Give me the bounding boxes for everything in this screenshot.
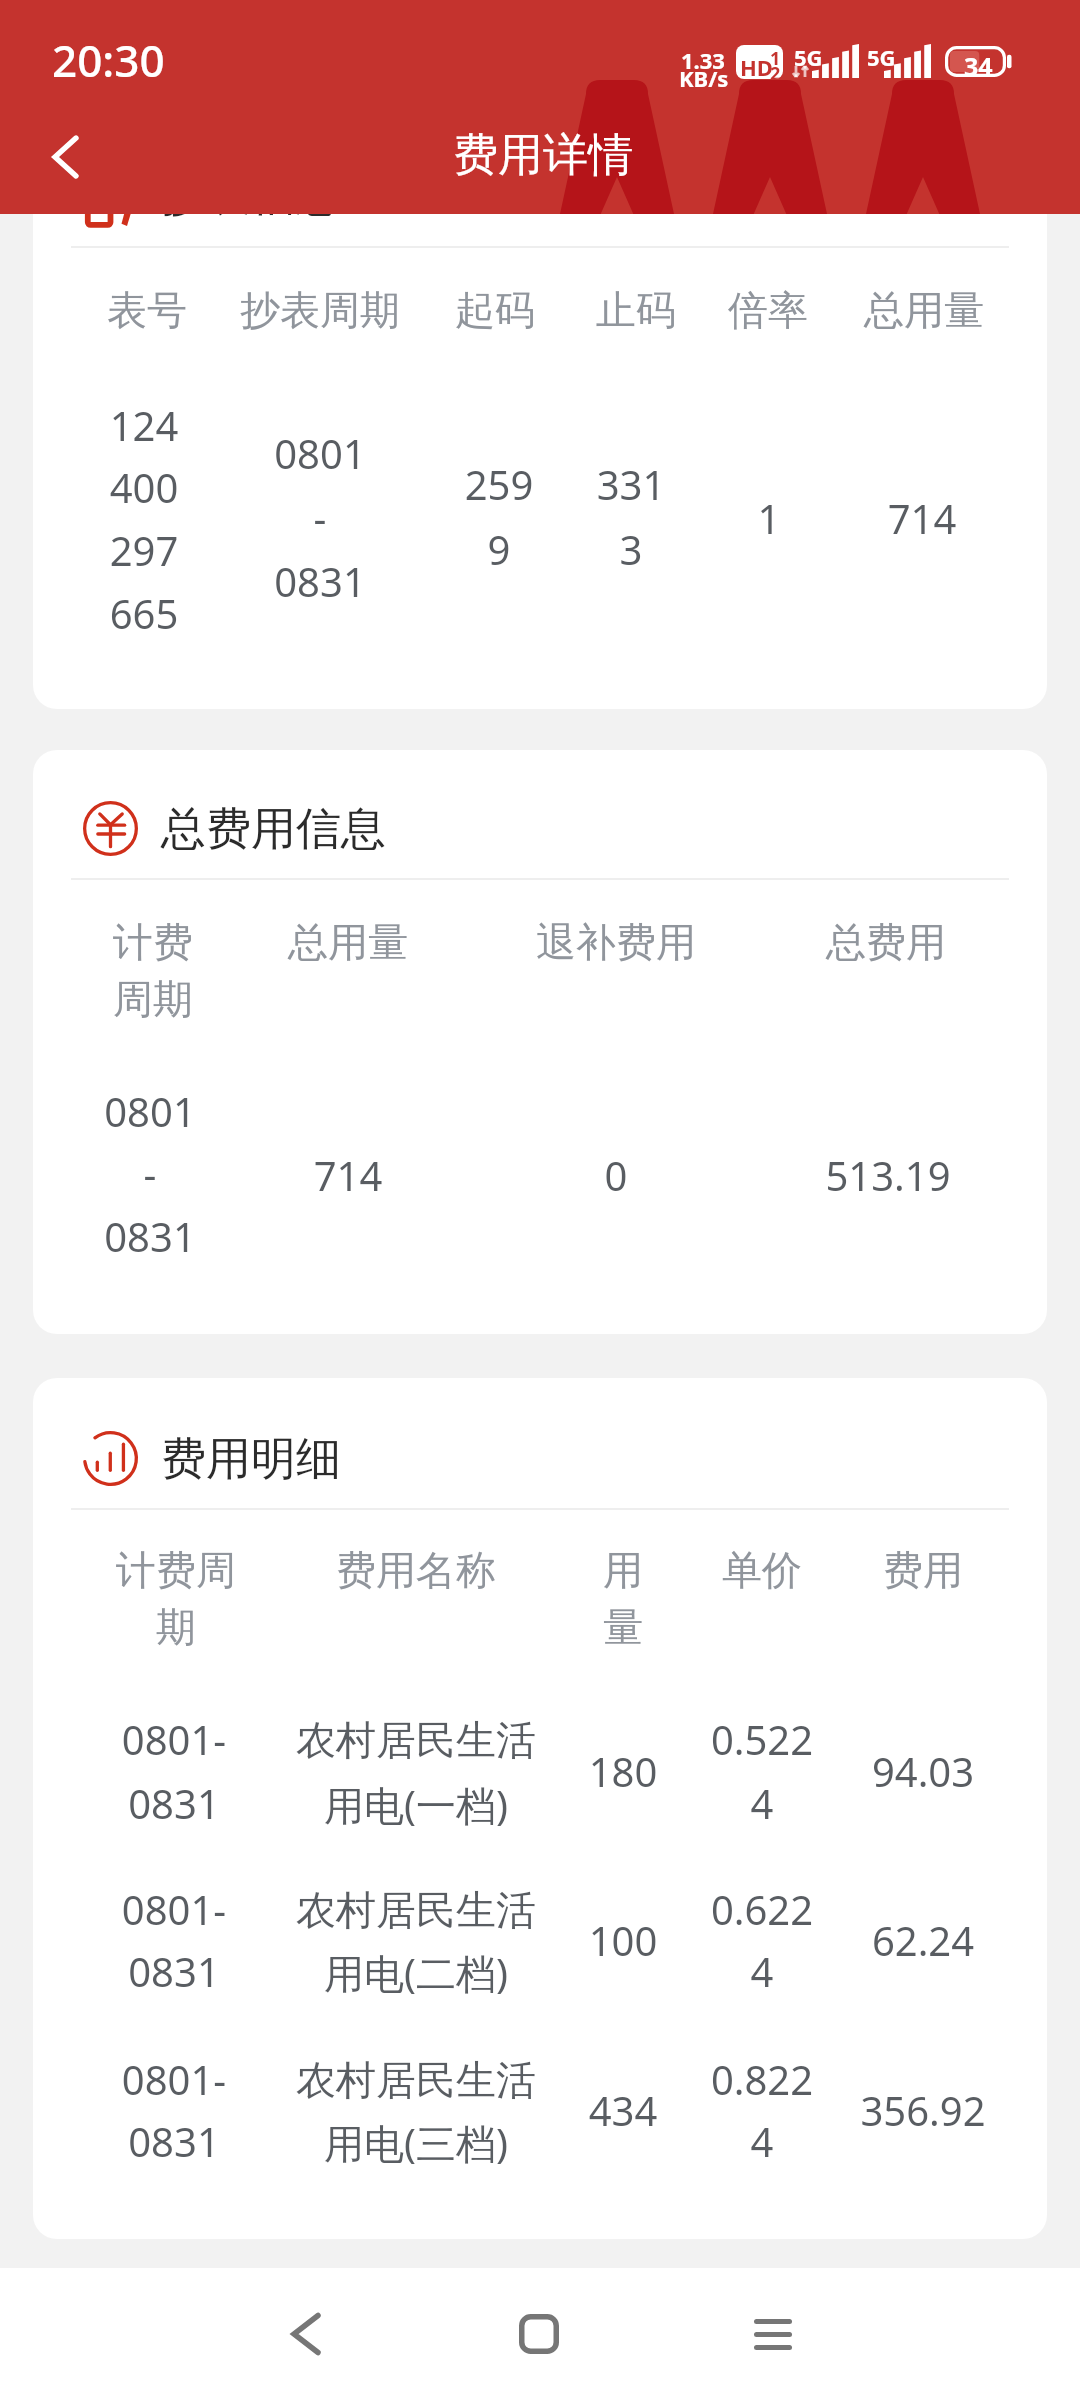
staticText: 农村居民生活 用电(三档) xyxy=(276,2055,556,2170)
button[interactable]: Home xyxy=(449,2268,629,2400)
staticText: 513.19 xyxy=(768,1148,1008,1202)
staticText: 用 量 xyxy=(593,1545,653,1653)
staticText: 0801- 0831 xyxy=(74,1882,274,1998)
staticText: 农村居民生活 用电(二档) xyxy=(276,1885,556,2000)
staticText: 总用量 xyxy=(824,285,1024,335)
staticText: 5G xyxy=(794,42,823,72)
button[interactable]: Back xyxy=(216,2268,396,2400)
staticText: 94.03 xyxy=(823,1744,1023,1798)
staticText: 抄表周期 xyxy=(205,285,435,335)
staticText: 费用 xyxy=(843,1545,1003,1595)
staticText: 0801- 0831 xyxy=(74,2052,274,2169)
staticText: 总费用信息 xyxy=(161,801,386,858)
staticText: 退补费用 xyxy=(491,917,741,967)
staticText: 331 3 xyxy=(551,457,711,577)
staticText: 起码 xyxy=(415,285,575,335)
staticText: 124 400 297 665 xyxy=(64,398,224,641)
staticText: 农村居民生活 用电(一档) xyxy=(276,1715,556,1832)
staticText: 单价 xyxy=(682,1545,842,1595)
staticText: 抄表信息 xyxy=(161,167,341,224)
staticText: 费用名称 xyxy=(296,1545,536,1595)
staticText: 0801 - 0831 xyxy=(50,1084,250,1264)
staticText: 62.24 xyxy=(823,1913,1023,1967)
staticText: 714 xyxy=(842,491,1002,545)
staticText: 0.822 4 xyxy=(677,2052,847,2169)
staticText: HD xyxy=(740,52,773,79)
staticText: 倍率 xyxy=(688,285,848,335)
staticText: 180 xyxy=(563,1744,683,1798)
staticText: 0.622 4 xyxy=(677,1882,847,1998)
button[interactable]: Back xyxy=(18,113,104,199)
staticText: 356.92 xyxy=(823,2083,1023,2137)
staticText: 0801 - 0831 xyxy=(220,426,420,609)
staticText: 止码 xyxy=(556,285,716,335)
staticText: 5G xyxy=(867,42,896,72)
staticText: 计费 周期 xyxy=(93,917,213,1025)
staticText: 费用详情 xyxy=(343,127,743,184)
staticText: 2 xyxy=(770,61,781,79)
staticText: 总费用 xyxy=(786,917,986,967)
staticText: 20:30 xyxy=(52,30,165,90)
staticText: 34 xyxy=(964,49,993,83)
staticText: 总用量 xyxy=(248,917,448,967)
button[interactable]: Recent apps xyxy=(683,2268,863,2400)
staticText: 259 9 xyxy=(419,457,579,577)
staticText: 0.522 4 xyxy=(677,1712,847,1831)
staticText: 1 xyxy=(689,491,849,545)
staticText: 100 xyxy=(563,1913,683,1967)
staticText: KB/s xyxy=(679,63,729,93)
staticText: 714 xyxy=(248,1148,448,1202)
staticText: 1.33 xyxy=(681,45,725,75)
staticText: 0801- 0831 xyxy=(74,1712,274,1831)
staticText: 费用明细 xyxy=(161,1431,341,1488)
staticText: 1 xyxy=(770,46,781,71)
staticText: 计费周 期 xyxy=(81,1545,271,1653)
staticText: 434 xyxy=(563,2083,683,2137)
staticText: 0 xyxy=(516,1148,716,1202)
staticText: 表号 xyxy=(47,285,247,335)
